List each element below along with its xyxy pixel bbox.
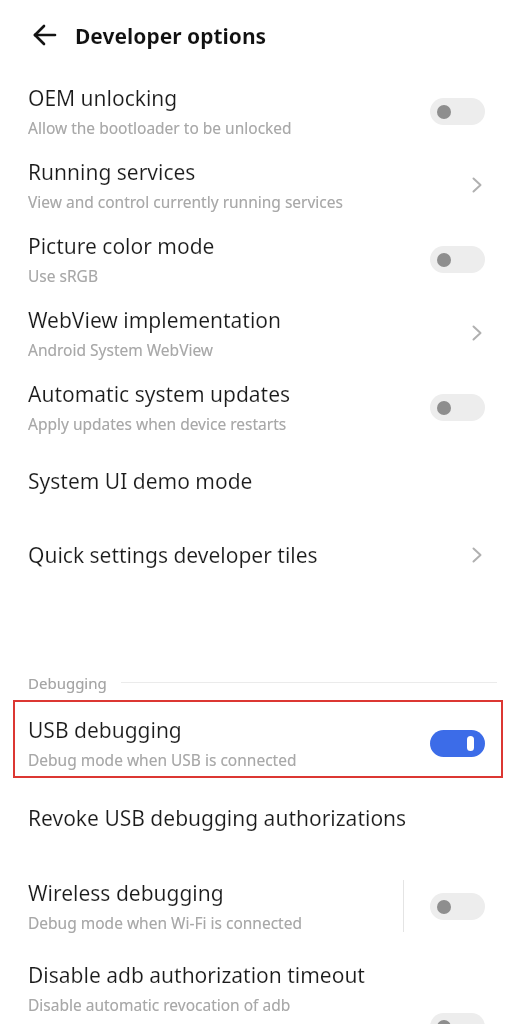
button[interactable]: Running services: [0, 148, 513, 222]
staticText: OEM unlocking: [28, 84, 178, 113]
button[interactable]: [33, 24, 57, 48]
staticText: Debugging: [28, 673, 107, 693]
button[interactable]: OEM unlocking: [0, 74, 513, 148]
staticText: Debug mode when Wi-Fi is connected: [28, 912, 302, 933]
staticText: System UI demo mode: [28, 467, 253, 496]
staticText: Allow the bootloader to be unlocked: [28, 117, 292, 138]
staticText: Apply updates when device restarts: [28, 413, 287, 434]
staticText: Developer options: [75, 22, 267, 51]
staticText: Disable automatic revocation of adb: [28, 994, 291, 1015]
button[interactable]: [430, 730, 485, 757]
staticText: Revoke USB debugging authorizations: [28, 804, 407, 833]
staticText: View and control currently running servi…: [28, 191, 343, 212]
button[interactable]: Wireless debugging: [0, 869, 513, 943]
staticText: Automatic system updates: [28, 380, 291, 409]
button[interactable]: Automatic system updates: [0, 370, 513, 444]
button[interactable]: [430, 893, 485, 920]
button[interactable]: System UI demo mode: [0, 444, 513, 518]
staticText: WebView implementation: [28, 306, 282, 335]
staticText: Use sRGB: [28, 265, 98, 286]
button[interactable]: Disable adb authorization timeout: [0, 952, 513, 1024]
staticText: Picture color mode: [28, 232, 215, 261]
staticText: Quick settings developer tiles: [28, 541, 318, 570]
staticText: Android System WebView: [28, 339, 214, 360]
staticText: Disable adb authorization timeout: [28, 961, 365, 990]
button[interactable]: [430, 394, 485, 421]
staticText: Running services: [28, 158, 196, 187]
button[interactable]: WebView implementation: [0, 296, 513, 370]
button[interactable]: [430, 246, 485, 273]
staticText: USB debugging: [28, 716, 182, 745]
button[interactable]: [430, 98, 485, 125]
button[interactable]: Quick settings developer tiles: [0, 518, 513, 592]
staticText: Debug mode when USB is connected: [28, 749, 297, 770]
button[interactable]: Revoke USB debugging authorizations: [0, 778, 513, 858]
button[interactable]: Picture color mode: [0, 222, 513, 296]
staticText: Wireless debugging: [28, 879, 224, 908]
button[interactable]: [430, 1013, 485, 1024]
button[interactable]: USB debugging: [13, 700, 503, 778]
